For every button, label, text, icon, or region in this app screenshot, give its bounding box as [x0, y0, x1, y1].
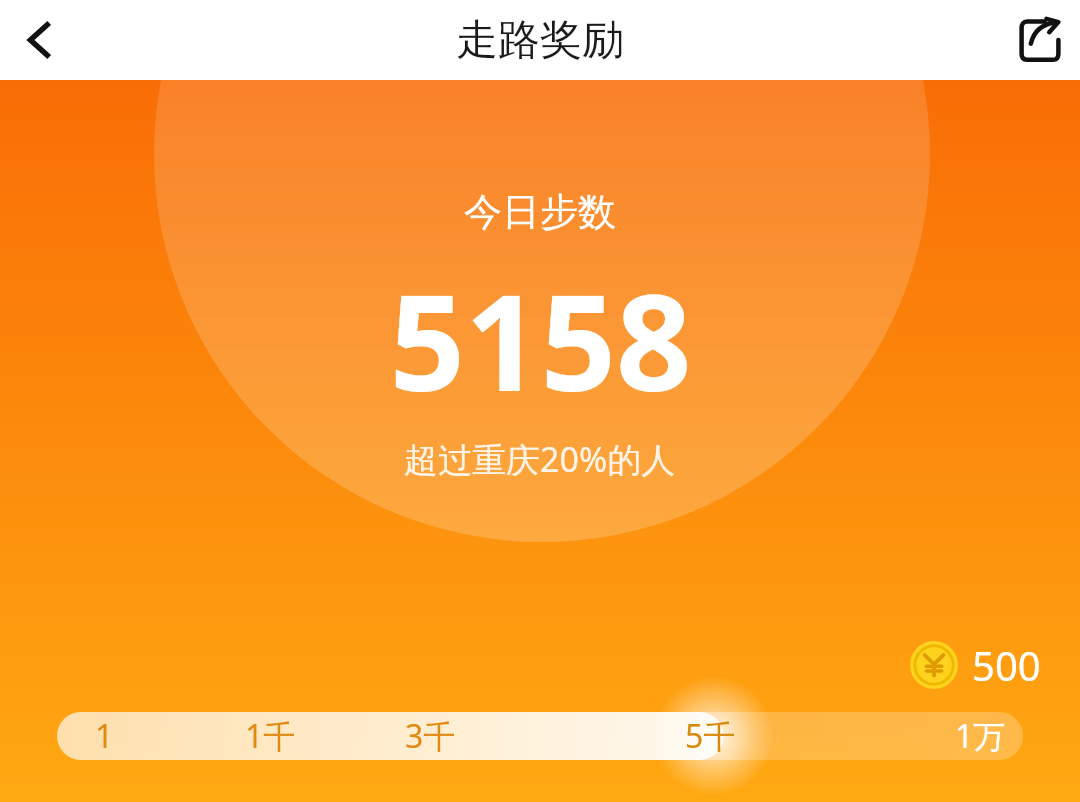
staticText: 走路奖励	[456, 14, 624, 67]
staticText: 1	[95, 714, 114, 758]
staticText: 1万	[955, 714, 1006, 758]
button[interactable]: Share	[1000, 0, 1080, 80]
staticText: 今日步数	[464, 188, 616, 236]
staticText: 5158	[389, 250, 692, 430]
staticText: 超过重庆20%的人	[404, 436, 676, 482]
button[interactable]: 500	[910, 638, 1041, 692]
button[interactable]: 1	[57, 712, 1023, 760]
staticText: 3千	[405, 714, 456, 758]
staticText: 500	[972, 638, 1041, 692]
staticText: 5千	[685, 714, 736, 758]
staticText: 1千	[245, 714, 296, 758]
button[interactable]: Back	[0, 0, 80, 80]
